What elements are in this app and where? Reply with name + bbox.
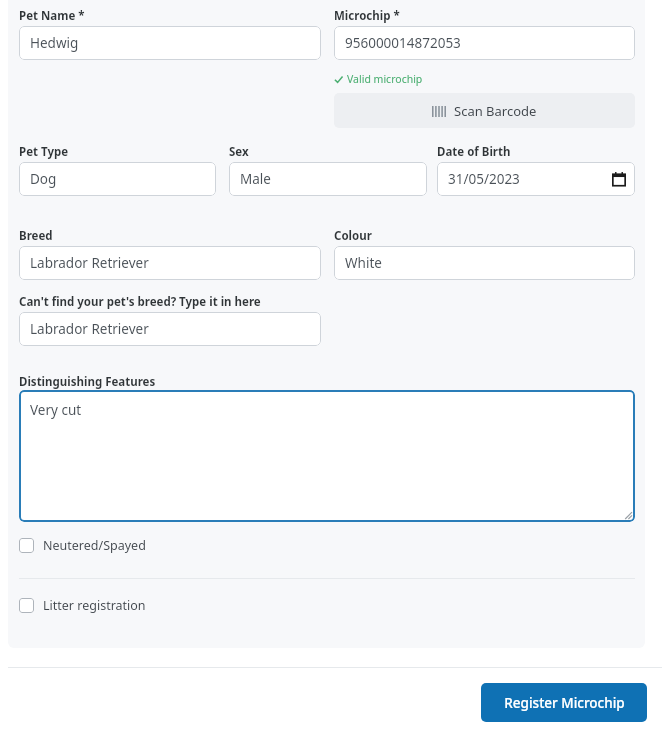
- staticText: Labrador Retriever: [30, 320, 312, 338]
- staticText: Scan Barcode: [454, 102, 537, 120]
- staticText: Dog: [30, 170, 207, 188]
- staticText: Pet Name *: [19, 8, 85, 24]
- button[interactable]: 31/05/2023: [437, 162, 635, 196]
- button[interactable]: Labrador Retriever: [19, 246, 321, 280]
- staticText: Hedwig: [30, 34, 312, 52]
- button[interactable]: Register Microchip: [481, 683, 647, 722]
- button[interactable]: 956000014872053: [334, 26, 635, 60]
- staticText: Very cut: [30, 401, 82, 419]
- button[interactable]: Labrador Retriever: [19, 312, 321, 346]
- staticText: Distinguishing Features: [19, 374, 156, 390]
- staticText: 956000014872053: [345, 34, 626, 52]
- staticText: Pet Type: [19, 144, 69, 160]
- staticText: Litter registration: [43, 597, 146, 614]
- staticText: Breed: [19, 228, 53, 244]
- other: Scan Barcode: [432, 106, 446, 117]
- staticText: Labrador Retriever: [30, 254, 312, 272]
- button[interactable]: Neutered/Spayed: [0, 528, 670, 562]
- staticText: Date of Birth: [437, 144, 511, 160]
- button[interactable]: Scan Barcode: [334, 93, 635, 128]
- button[interactable]: Hedwig: [19, 26, 321, 60]
- staticText: Microchip *: [334, 8, 400, 24]
- staticText: Can't find your pet's breed? Type it in …: [19, 294, 261, 310]
- button[interactable]: Male: [229, 162, 427, 196]
- staticText: 31/05/2023: [448, 170, 612, 188]
- button[interactable]: Litter registration: [0, 588, 670, 622]
- staticText: Colour: [334, 228, 372, 244]
- staticText: Register Microchip: [504, 694, 625, 712]
- staticText: Male: [240, 170, 418, 188]
- staticText: Sex: [229, 144, 249, 160]
- button[interactable]: Very cut: [19, 390, 635, 522]
- staticText: White: [345, 254, 626, 272]
- staticText: Neutered/Spayed: [43, 537, 146, 554]
- button[interactable]: White: [334, 246, 635, 280]
- button[interactable]: Dog: [19, 162, 216, 196]
- staticText: Valid microchip: [347, 72, 423, 86]
